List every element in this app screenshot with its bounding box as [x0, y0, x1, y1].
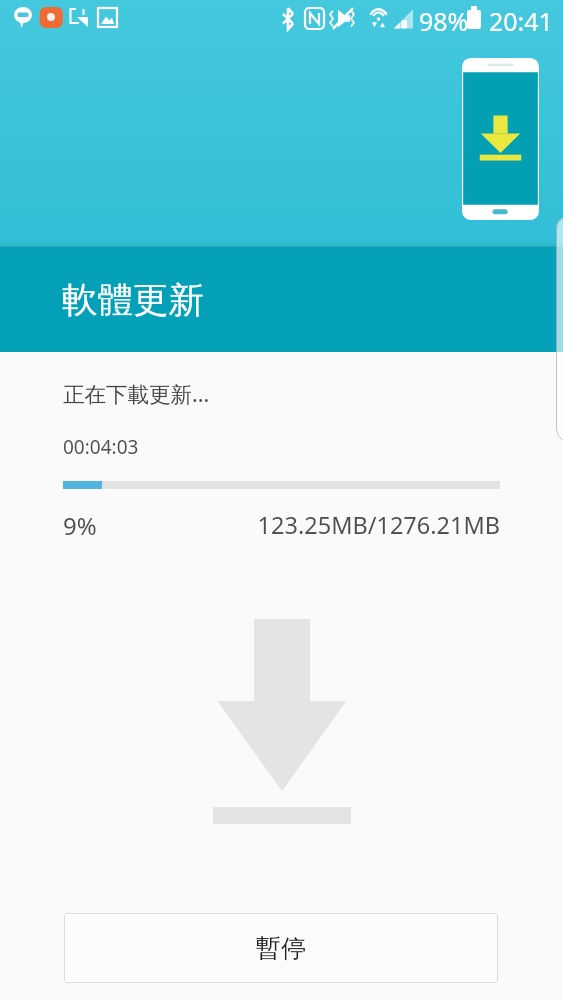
staticText: 軟體更新 — [62, 278, 204, 323]
staticText: 20:41 — [489, 4, 553, 38]
staticText: 暫停 — [256, 933, 306, 964]
button[interactable]: 暫停 — [64, 913, 498, 983]
staticText: 123.25MB/1276.21MB — [200, 509, 500, 541]
staticText: 98% — [419, 4, 469, 38]
button[interactable]: Open Edge panel — [556, 216, 563, 442]
staticText: 00:04:03 — [63, 434, 139, 460]
staticText: 9% — [63, 509, 97, 542]
staticText: 正在下載更新... — [63, 379, 210, 408]
